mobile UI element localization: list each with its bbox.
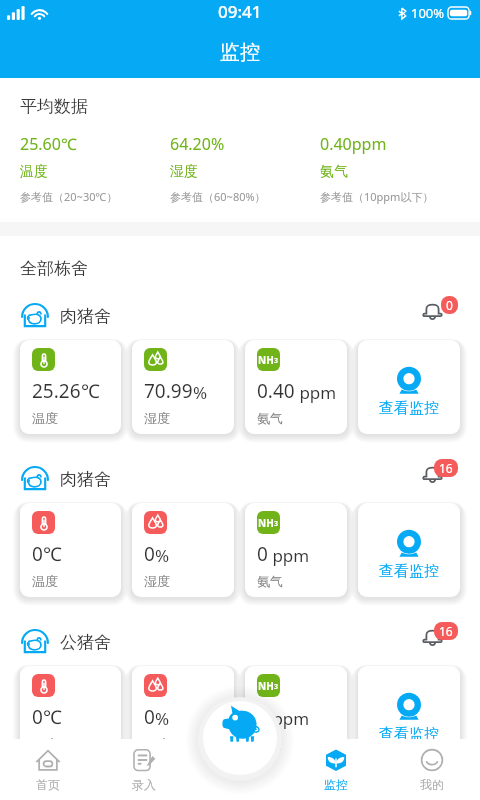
- staticText: 平均数据: [20, 96, 88, 117]
- button[interactable]: 0: [20, 666, 121, 760]
- button[interactable]: Alerts: [420, 464, 460, 494]
- staticText: 录入: [132, 777, 156, 792]
- staticText: 氨气: [257, 410, 283, 426]
- staticText: 公猪舍: [60, 632, 111, 653]
- staticText: 参考值（20~30℃）: [20, 189, 118, 204]
- button[interactable]: 查看监控: [358, 503, 460, 597]
- staticText: 全部栋舍: [20, 258, 88, 279]
- button[interactable]: 查看监控: [358, 340, 460, 434]
- staticText: NH: [258, 353, 274, 367]
- button[interactable]: 录入: [96, 739, 192, 800]
- staticText: 100%: [411, 4, 445, 22]
- staticText: 70.99: [144, 378, 193, 404]
- staticText: 监控: [220, 40, 260, 65]
- staticText: 湿度: [144, 736, 170, 752]
- staticText: 25.26: [32, 378, 81, 404]
- staticText: 氨气: [320, 163, 348, 181]
- button[interactable]: 0: [132, 503, 234, 597]
- staticText: 0: [32, 704, 43, 730]
- staticText: 09:41: [218, 0, 262, 23]
- button[interactable]: Alerts: [420, 301, 460, 331]
- staticText: ppm: [295, 381, 337, 404]
- staticText: 湿度: [144, 573, 170, 589]
- staticText: 16: [439, 623, 453, 639]
- staticText: 温度: [20, 163, 48, 181]
- button[interactable]: NH: [245, 340, 347, 434]
- staticText: 0: [257, 541, 268, 567]
- staticText: %: [155, 544, 170, 567]
- button[interactable]: NH: [245, 666, 347, 760]
- button[interactable]: 25.26: [20, 340, 121, 434]
- staticText: 肉猪舍: [60, 469, 111, 490]
- button[interactable]: Add record: [202, 684, 278, 760]
- staticText: 16: [439, 460, 453, 476]
- staticText: 氨气: [257, 573, 283, 589]
- button[interactable]: 监控: [288, 739, 384, 800]
- staticText: 0: [257, 704, 268, 730]
- staticText: 查看监控: [379, 725, 439, 744]
- staticText: 3: [274, 356, 279, 366]
- staticText: 0: [144, 704, 155, 730]
- staticText: 0: [446, 297, 453, 313]
- button[interactable]: 0: [132, 666, 234, 760]
- staticText: 0: [32, 541, 43, 567]
- staticText: 肉猪舍: [60, 306, 111, 327]
- staticText: 监控: [324, 777, 348, 792]
- staticText: 湿度: [144, 410, 170, 426]
- staticText: 参考值（60~80%）: [170, 189, 266, 204]
- staticText: 0.40: [257, 378, 295, 404]
- staticText: 0.40ppm: [320, 133, 387, 155]
- staticText: 温度: [32, 736, 58, 752]
- staticText: 氨气: [257, 736, 283, 752]
- staticText: 3: [274, 682, 279, 692]
- staticText: 参考值（10ppm以下）: [320, 189, 434, 204]
- staticText: %: [193, 381, 208, 404]
- staticText: 湿度: [170, 163, 198, 181]
- button[interactable]: 70.99: [132, 340, 234, 434]
- staticText: 0: [144, 541, 155, 567]
- staticText: 64.20%: [170, 133, 225, 155]
- staticText: NH: [258, 679, 274, 693]
- staticText: 首页: [36, 777, 60, 792]
- staticText: 25.60℃: [20, 133, 77, 155]
- button[interactable]: NH: [245, 503, 347, 597]
- staticText: 温度: [32, 410, 58, 426]
- staticText: 查看监控: [379, 399, 439, 418]
- staticText: %: [155, 707, 170, 730]
- staticText: 温度: [32, 573, 58, 589]
- button[interactable]: 0: [20, 503, 121, 597]
- staticText: ℃: [43, 541, 62, 567]
- staticText: ℃: [81, 378, 100, 404]
- staticText: 查看监控: [379, 562, 439, 581]
- staticText: 我的: [420, 777, 444, 792]
- button[interactable]: 我的: [384, 739, 480, 800]
- staticText: ℃: [43, 704, 62, 730]
- button[interactable]: 首页: [0, 739, 96, 800]
- staticText: 3: [274, 519, 279, 529]
- staticText: NH: [258, 516, 274, 530]
- staticText: ppm: [268, 544, 310, 567]
- button[interactable]: 查看监控: [358, 666, 460, 760]
- staticText: ppm: [268, 707, 310, 730]
- button[interactable]: Alerts: [420, 627, 460, 657]
